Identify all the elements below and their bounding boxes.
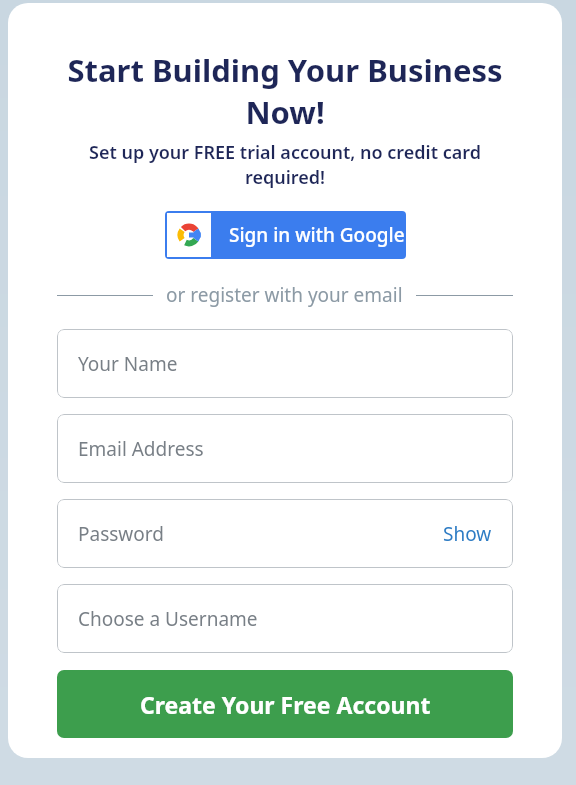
staticText: Sign in with Google	[229, 222, 405, 248]
button[interactable]: Password	[57, 499, 513, 568]
staticText: Create Your Free Account	[140, 689, 431, 720]
button[interactable]: Your Name	[57, 329, 513, 398]
button[interactable]: Email Address	[57, 414, 513, 483]
staticText: Email Address	[78, 436, 204, 462]
staticText: Show	[443, 521, 492, 547]
staticText: Choose a Username	[78, 606, 258, 632]
staticText: Password	[78, 521, 164, 547]
staticText: Start Building Your Business Now!	[57, 49, 513, 133]
staticText: or register with your email	[166, 282, 403, 308]
staticText: Your Name	[78, 351, 178, 377]
button[interactable]: Show	[443, 521, 492, 547]
button[interactable]: Sign in with Google	[165, 211, 406, 259]
button[interactable]: Choose a Username	[57, 584, 513, 653]
button[interactable]: Create Your Free Account	[57, 670, 513, 738]
staticText: Set up your FREE trial account, no credi…	[57, 140, 513, 190]
